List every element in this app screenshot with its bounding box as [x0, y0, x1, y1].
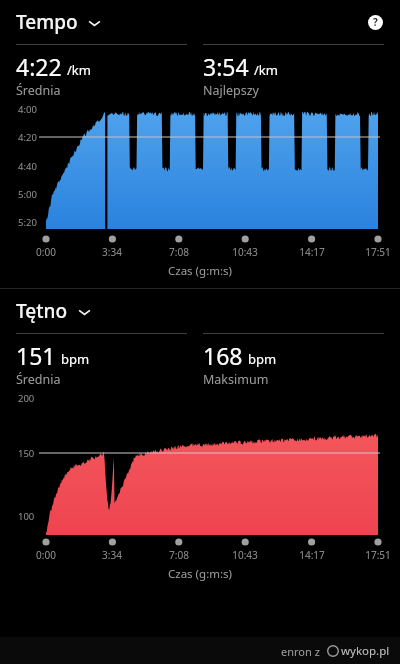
staticText: 3:34 — [102, 548, 122, 562]
staticText: 7:08 — [169, 245, 189, 259]
staticText: 5:00 — [18, 188, 37, 201]
staticText: Średnia — [16, 371, 61, 388]
button[interactable]: enron z — [281, 643, 390, 659]
staticText: 5:20 — [18, 216, 37, 229]
staticText: 10:43 — [232, 245, 258, 259]
button[interactable]: Tętno — [16, 298, 92, 324]
button[interactable]: 3:54 — [203, 44, 384, 99]
button[interactable]: 168 — [203, 333, 384, 388]
staticText: Czas (g:m:s) — [168, 566, 233, 582]
staticText: Czas (g:m:s) — [168, 263, 233, 279]
button[interactable]: 200 — [0, 388, 400, 536]
staticText: Maksimum — [203, 371, 269, 388]
staticText: 7:08 — [169, 548, 189, 562]
staticText: 4:40 — [18, 160, 37, 173]
staticText: 10:43 — [232, 548, 258, 562]
staticText: ? — [373, 15, 378, 29]
staticText: 200 — [18, 392, 35, 405]
staticText: /km — [254, 61, 278, 79]
staticText: 151 — [16, 340, 56, 371]
staticText: 4:00 — [18, 103, 37, 116]
staticText: 150 — [18, 447, 35, 460]
staticText: 0:00 — [36, 245, 56, 259]
staticText: wykop.pl — [341, 643, 390, 659]
staticText: /km — [67, 61, 91, 79]
staticText: 14:17 — [299, 245, 325, 259]
staticText: 17:51 — [365, 548, 391, 562]
staticText: Najlepszy — [203, 82, 259, 99]
staticText: 14:17 — [299, 548, 325, 562]
staticText: 100 — [18, 510, 35, 523]
staticText: 0:00 — [36, 548, 56, 562]
button[interactable]: 4:00 — [0, 99, 400, 233]
button[interactable]: Tempo — [16, 9, 102, 35]
staticText: enron z — [281, 644, 320, 659]
staticText: Tętno — [16, 298, 68, 324]
staticText: 168 — [203, 340, 243, 371]
button[interactable]: 151 — [16, 333, 187, 388]
staticText: Tempo — [16, 9, 78, 35]
staticText: 17:51 — [365, 245, 391, 259]
staticText: bpm — [61, 350, 90, 368]
button[interactable]: Help — [362, 9, 388, 35]
staticText: bpm — [248, 350, 277, 368]
staticText: 4:22 — [16, 51, 62, 82]
button[interactable]: 4:22 — [16, 44, 187, 99]
staticText: Średnia — [16, 82, 61, 99]
staticText: 3:34 — [102, 245, 122, 259]
staticText: 4:20 — [18, 131, 37, 144]
staticText: 3:54 — [203, 51, 249, 82]
